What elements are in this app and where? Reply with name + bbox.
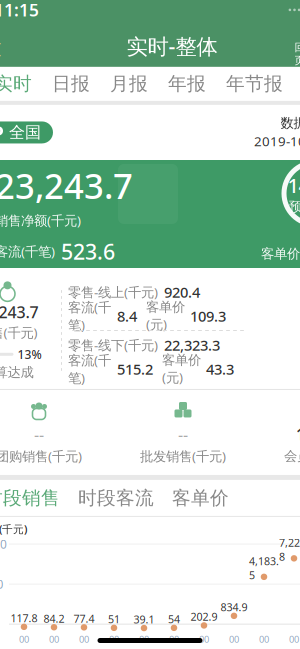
staticText: 10,000: [0, 536, 7, 552]
staticText: 客单价: [172, 486, 229, 509]
staticText: 00: [109, 633, 119, 645]
staticText: 202.9: [190, 610, 217, 624]
staticText: 团购销售(千元): [0, 447, 82, 465]
button[interactable]: 月报: [100, 67, 158, 101]
staticText: 523.6: [61, 237, 115, 265]
staticText: 00: [229, 633, 239, 645]
staticText: 客单价(元): [146, 299, 185, 333]
staticText: 时段客流: [78, 486, 154, 509]
staticText: 客单价(元): [261, 244, 300, 262]
staticText: --: [34, 424, 44, 445]
staticText: 7,220.8: [279, 535, 300, 564]
staticText: 23,243.7: [0, 301, 38, 322]
button[interactable]: 年报: [158, 67, 216, 101]
staticText: 11:15: [0, 0, 39, 21]
button[interactable]: 返回: [0, 26, 16, 66]
button[interactable]: 日报: [42, 67, 100, 101]
staticText: 批发销售(千元): [140, 447, 226, 465]
staticText: 43.3: [206, 359, 234, 379]
staticText: 月报: [110, 72, 148, 95]
staticText: 00: [199, 633, 209, 645]
staticText: 14.6%: [287, 172, 300, 199]
staticText: 客流(千笔): [0, 242, 55, 260]
button[interactable]: 全国: [0, 121, 53, 143]
staticText: 销售(千元): [0, 522, 27, 536]
staticText: 回到首页: [294, 41, 300, 67]
staticText: 00: [49, 633, 59, 645]
staticText: 时段销售: [0, 486, 60, 509]
staticText: 00: [19, 633, 29, 645]
staticText: 920.4: [164, 282, 200, 302]
staticText: 84.2: [43, 611, 64, 626]
button[interactable]: 时段销售: [0, 480, 69, 516]
staticText: 零售(千元): [0, 324, 37, 341]
staticText: 全国: [9, 123, 41, 142]
button[interactable]: --: [0, 390, 111, 475]
staticText: 数据更新时间: [280, 115, 300, 131]
staticText: 51: [108, 612, 120, 626]
staticText: 22,323.3: [164, 335, 220, 355]
staticText: 00: [79, 633, 89, 645]
staticText: ‹: [0, 23, 1, 69]
staticText: 54: [168, 612, 180, 626]
staticText: 117.8: [10, 611, 37, 625]
button[interactable]: 年节报: [216, 67, 293, 101]
staticText: 客单价(元): [162, 352, 201, 386]
staticText: 10,143.3: [296, 423, 300, 445]
staticText: 8.4: [117, 306, 137, 326]
staticText: 00: [259, 633, 269, 645]
staticText: 13%: [17, 346, 41, 362]
staticText: 销售净额(千元): [0, 211, 81, 229]
staticText: 2019-10-31 11:11:35: [254, 132, 300, 150]
button[interactable]: 实时: [0, 67, 42, 101]
button[interactable]: 时段客流: [69, 480, 163, 516]
button[interactable]: 10,143.3: [255, 390, 300, 474]
staticText: 年报: [168, 72, 206, 95]
button[interactable]: 客单价: [163, 480, 238, 516]
staticText: 23,243.7: [0, 162, 133, 208]
staticText: --: [178, 424, 188, 445]
staticText: 4,183.5: [249, 554, 279, 582]
staticText: 日报: [52, 72, 90, 95]
staticText: 5,000: [0, 576, 3, 592]
staticText: 834.9: [220, 600, 247, 614]
staticText: 客流(千笔): [68, 298, 111, 334]
button[interactable]: --: [111, 390, 255, 475]
staticText: 客流(千笔): [68, 351, 111, 387]
staticText: 515.2: [117, 359, 153, 379]
staticText: 零售-线下(千元): [68, 336, 158, 354]
button[interactable]: 回到首页: [294, 26, 300, 66]
staticText: 实时: [0, 72, 32, 95]
staticText: 00: [139, 633, 149, 645]
staticText: 109.3: [190, 306, 226, 326]
staticText: 39.1: [133, 612, 154, 626]
staticText: 77.4: [73, 611, 94, 626]
staticText: 00: [289, 633, 299, 645]
staticText: 00: [169, 633, 179, 645]
staticText: 预算达成: [289, 198, 300, 215]
staticText: 年节报: [226, 72, 283, 95]
staticText: 零售-线上(千元): [68, 283, 158, 301]
staticText: 实时-整体: [126, 32, 217, 60]
staticText: 预算达成: [0, 364, 33, 381]
staticText: 会员销售(千元): [284, 447, 300, 464]
